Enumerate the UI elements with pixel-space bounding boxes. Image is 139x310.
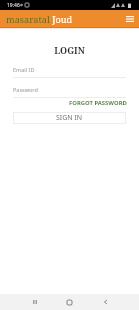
staticText: SIGN IN	[56, 113, 83, 123]
button[interactable]: Menu	[121, 10, 139, 28]
button[interactable]: Home	[57, 294, 81, 310]
staticText: Email ID	[13, 66, 35, 73]
staticText: Password	[13, 86, 38, 93]
staticText: 19:46	[7, 2, 20, 9]
staticText: masaratal Joud	[6, 13, 73, 26]
staticText: LOGIN	[0, 44, 139, 56]
button[interactable]: FORGOT PASSWORD	[0, 99, 127, 107]
button[interactable]: Recents	[23, 294, 47, 310]
staticText: FORGOT PASSWORD	[69, 99, 127, 107]
button[interactable]: Back	[93, 294, 117, 310]
button[interactable]: SIGN IN	[13, 112, 126, 124]
